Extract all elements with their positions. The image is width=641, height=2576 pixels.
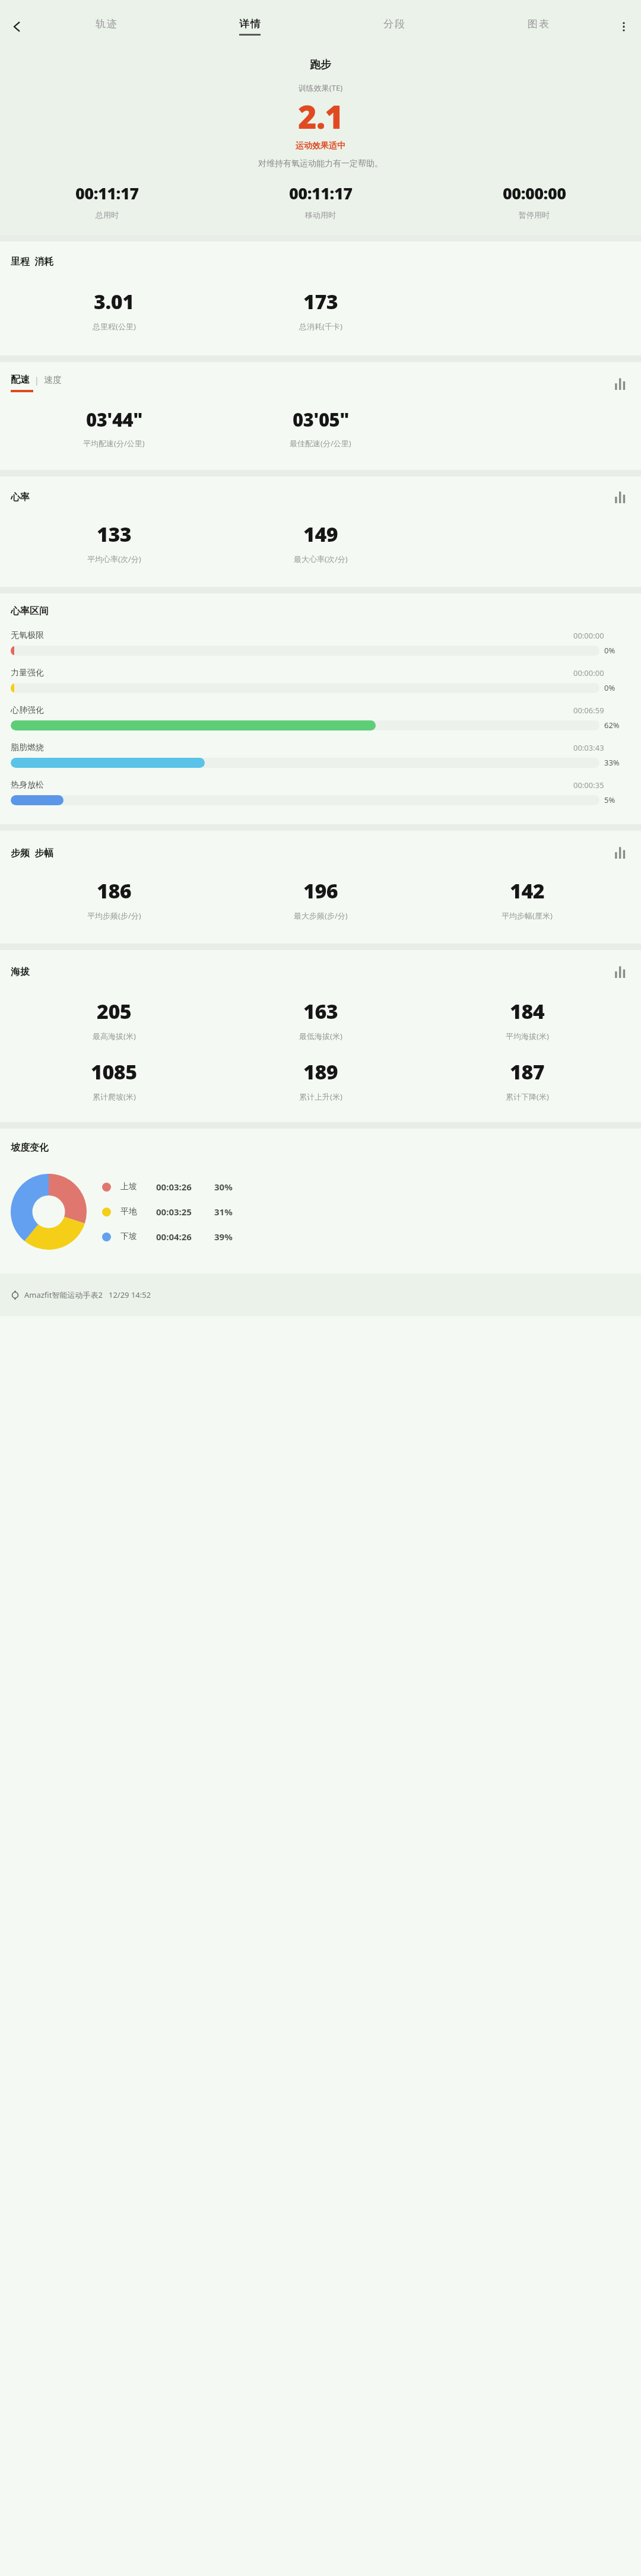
staticText: 力量强化 [11,668,44,678]
staticText: 00:03:43 [573,742,604,753]
staticText: 最佳配速(分/公里) [290,438,351,449]
staticText: 33% [604,757,620,768]
staticText: 累计下降(米) [506,1091,549,1102]
staticText: 累计上升(米) [299,1091,342,1102]
button[interactable]: 热身放松 [11,776,630,809]
staticText: 133 [97,520,132,548]
staticText: 2.1 [0,94,641,138]
staticText: 00:04:26 [156,1231,208,1243]
staticText: 平均心率(次/分) [87,554,141,564]
staticText: 189 [303,1058,338,1085]
staticText: 平均步频(步/分) [87,910,141,921]
staticText: 31% [214,1206,233,1218]
staticText: 00:00:00 [503,182,566,204]
staticText: 轨迹 [95,18,118,30]
button[interactable]: 轨迹 [34,13,178,40]
staticText: 坡度变化 [11,1142,49,1154]
staticText: 1085 [91,1058,137,1085]
staticText: 分段 [383,18,405,30]
staticText: 186 [97,877,132,904]
staticText: 00:11:17 [289,182,353,204]
staticText: 平均步幅(厘米) [502,910,553,921]
button[interactable]: 脂肪燃烧 [11,739,630,771]
staticText: 心率区间 [11,605,49,617]
staticText: 跑步 [0,58,641,72]
staticText: 3.01 [94,288,134,315]
staticText: 00:00:00 [573,630,604,641]
staticText: 平均海拔(米) [506,1031,549,1041]
button[interactable]: 配速 [11,374,30,386]
staticText: 总消耗(千卡) [299,321,342,332]
staticText: 163 [303,998,338,1025]
staticText: 无氧极限 [11,630,44,641]
staticText: 心肺强化 [11,705,44,716]
staticText: 步频 步幅 [11,846,54,859]
staticText: 热身放松 [11,780,44,790]
button[interactable]: 下坡 [102,1231,630,1243]
staticText: 00:11:17 [75,182,139,204]
staticText: | [30,374,44,386]
staticText: 196 [303,877,338,904]
staticText: 运动效果适中 [0,141,641,151]
staticText: 187 [510,1058,545,1085]
staticText: 39% [214,1231,233,1243]
staticText: 图表 [527,18,550,30]
staticText: 62% [604,720,620,730]
staticText: 训练效果(TE) [0,82,641,93]
button[interactable]: View chart [610,962,630,982]
button[interactable]: Back [4,13,31,40]
staticText: 最高海拔(米) [93,1031,136,1041]
button[interactable]: 上坡 [102,1181,630,1193]
staticText: 海拔 [11,966,30,978]
staticText: 总里程(公里) [93,321,136,332]
staticText: 移动用时 [305,210,336,220]
staticText: 平均配速(分/公里) [83,438,145,449]
button[interactable]: 图表 [466,13,610,40]
button[interactable]: 力量强化 [11,664,630,697]
staticText: 00:00:35 [573,780,604,790]
button[interactable]: 速度 [44,374,62,386]
staticText: 03'05" [293,407,349,432]
staticText: 最大步频(步/分) [294,910,348,921]
button[interactable]: 详情 [178,13,322,40]
staticText: 5% [604,795,615,805]
staticText: 下坡 [120,1231,150,1242]
staticText: 00:03:26 [156,1181,208,1193]
staticText: 平地 [120,1206,150,1217]
staticText: 0% [604,682,615,693]
staticText: 149 [303,520,338,548]
staticText: 详情 [239,18,261,30]
staticText: 03'44" [86,407,142,432]
button[interactable]: View chart [610,487,630,507]
staticText: 0% [604,645,615,656]
staticText: 脂肪燃烧 [11,742,44,753]
staticText: 00:06:59 [573,705,604,716]
staticText: 173 [303,288,338,315]
staticText: 最大心率(次/分) [294,554,348,564]
staticText: 累计爬坡(米) [93,1091,136,1102]
staticText: 205 [97,998,132,1025]
staticText: 上坡 [120,1181,150,1192]
staticText: 00:00:00 [573,668,604,678]
button[interactable]: More options [610,13,637,40]
staticText: 速度 [44,374,62,386]
staticText: 配速 [11,374,30,386]
staticText: 总用时 [96,210,119,220]
button[interactable]: View chart [610,374,630,394]
staticText: 30% [214,1181,233,1193]
staticText: 里程 消耗 [11,255,54,268]
staticText: 心率 [11,491,30,503]
staticText: 00:03:25 [156,1206,208,1218]
staticText: 暂停用时 [519,210,550,220]
staticText: Amazfit智能运动手表2 12/29 14:52 [24,1289,151,1300]
staticText: 最低海拔(米) [299,1031,342,1041]
button[interactable]: 分段 [322,13,466,40]
button[interactable]: View chart [610,843,630,863]
staticText: 142 [510,877,545,904]
button[interactable]: 平地 [102,1206,630,1218]
button[interactable]: 心肺强化 [11,701,630,734]
staticText: 184 [510,998,545,1025]
button[interactable]: 无氧极限 [11,627,630,659]
staticText: 对维持有氧运动能力有一定帮助。 [0,158,641,169]
